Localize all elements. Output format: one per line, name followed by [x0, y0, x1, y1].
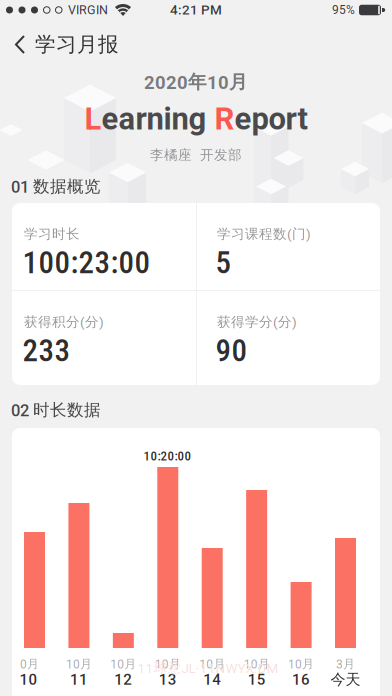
staticText: 3月: [336, 656, 355, 671]
staticText: 学习课程数(门): [217, 225, 311, 242]
staticText: 10月: [66, 656, 92, 671]
staticText: 10月: [110, 656, 136, 671]
staticText: earning: [101, 101, 206, 137]
staticText: 0月: [20, 656, 39, 671]
staticText: 10月: [244, 656, 270, 671]
staticText: 13: [159, 671, 177, 688]
staticText: 11: [70, 671, 88, 688]
staticText: 100:23:00: [22, 244, 150, 281]
staticText: 95%: [332, 3, 355, 17]
staticText: 开发部: [200, 146, 242, 163]
staticText: 今天: [330, 670, 360, 689]
button[interactable]: 返回: [0, 29, 119, 55]
staticText: 233: [22, 332, 70, 369]
staticText: 学习月报: [35, 32, 119, 57]
staticText: 2020年10月: [144, 70, 248, 94]
staticText: 01 数据概览: [11, 176, 101, 197]
staticText: 10: [19, 671, 37, 688]
staticText: 5: [215, 244, 231, 281]
staticText: 16: [292, 671, 310, 688]
staticText: L: [84, 101, 101, 137]
staticText: 90: [215, 332, 247, 369]
staticText: 12: [114, 671, 132, 688]
staticText: 李橘座: [150, 146, 192, 163]
staticText: 学习时长: [24, 225, 80, 242]
staticText: 获得学分(分): [217, 313, 297, 330]
staticText: 11球意JL·11NWYX.DM: [137, 659, 278, 676]
staticText: 14: [203, 671, 221, 688]
staticText: eport: [234, 101, 307, 137]
staticText: 4:21 PM: [170, 2, 222, 18]
staticText: 10:20:00: [143, 448, 191, 464]
staticText: 10月: [199, 656, 225, 671]
staticText: 15: [248, 671, 266, 688]
staticText: VIRGIN: [68, 3, 108, 17]
staticText: 02 时长数据: [11, 400, 101, 420]
staticText: R: [214, 101, 234, 137]
staticText: 10月: [288, 656, 314, 671]
staticText: 获得积分(分): [24, 313, 104, 330]
staticText: 10月: [155, 656, 181, 671]
